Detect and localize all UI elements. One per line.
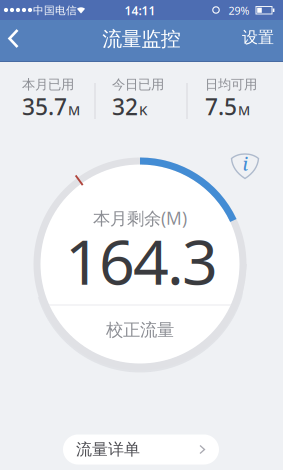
staticText: 流量详单 [76,440,140,459]
staticText: 7.5 [205,91,237,121]
button[interactable]: 返回 [2,26,26,51]
button[interactable]: 校正流量 [80,315,200,345]
button[interactable]: 说明 [230,151,260,180]
staticText: 日均可用 [205,76,257,93]
staticText: 164.3 [65,219,218,302]
staticText: M [68,101,80,119]
staticText: 本月剩余(M) [93,206,187,229]
staticText: 29% [228,3,249,18]
staticText: 14:11 [124,2,155,18]
staticText: 35.7 [22,91,67,121]
staticText: 32 [112,91,138,121]
button[interactable]: 流量详单 [63,434,219,464]
staticText: 本月已用 [22,76,74,93]
staticText: 校正流量 [106,319,174,341]
staticText: 设置 [242,28,274,47]
staticText: 流量监控 [102,27,181,51]
button[interactable]: 设置 [236,22,280,52]
staticText: 今日已用 [112,76,164,93]
staticText: K [139,101,147,119]
staticText: M [238,101,250,119]
staticText: 中国电信 [33,4,77,17]
staticText: i [242,152,248,176]
